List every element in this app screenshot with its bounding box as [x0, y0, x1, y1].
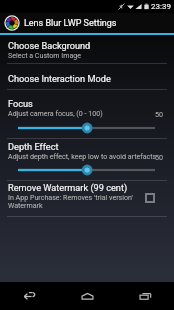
staticText: Remove Watermark (99 cent) — [8, 182, 128, 193]
staticText: Focus — [8, 98, 33, 109]
button[interactable]: Depth Effect slider — [0, 164, 174, 176]
staticText: Depth Effect — [8, 141, 59, 152]
staticText: Adjust camera focus, (0 - 100) — [8, 109, 103, 117]
button[interactable]: Recent apps — [116, 282, 174, 310]
staticText: Lens Blur LWP Settings — [24, 18, 117, 29]
button[interactable]: Home — [58, 282, 116, 310]
button[interactable]: Remove Watermark (99 cent) — [0, 181, 174, 212]
staticText: In App Purchase: Removes 'trial version'… — [8, 193, 142, 209]
staticText: 50 — [155, 110, 163, 118]
staticText: Select a Custom Image — [8, 51, 82, 59]
staticText: Choose Interaction Mode — [8, 73, 111, 84]
button[interactable]: Back — [0, 282, 58, 310]
staticText: Adjust depth effect, keep low to avoid a… — [8, 152, 157, 160]
button[interactable]: Remove Watermark checkbox — [145, 193, 155, 203]
staticText: 23:39 — [151, 2, 171, 11]
button[interactable]: Lens Blur LWP Settings — [0, 13, 174, 33]
staticText: Choose Background — [8, 40, 91, 51]
button[interactable]: Focus slider — [0, 122, 174, 134]
button[interactable]: Focus — [0, 97, 174, 117]
button[interactable]: Choose Background — [0, 39, 174, 62]
button[interactable]: Depth Effect — [0, 140, 174, 160]
staticText: 50 — [155, 153, 163, 161]
button[interactable]: Choose Interaction Mode — [0, 72, 174, 87]
